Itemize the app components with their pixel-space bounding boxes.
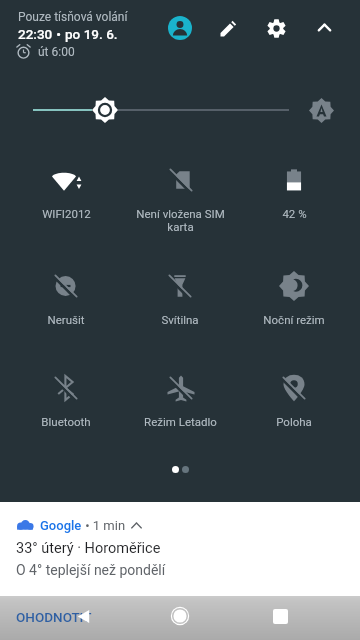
button[interactable]: OHODNOTIT [16, 609, 92, 625]
staticText: OHODNOTIT [16, 609, 92, 625]
button[interactable]: Není vložena SIM karta [123, 165, 237, 261]
staticText: Poloha [276, 415, 312, 428]
staticText: Google [40, 518, 82, 533]
button[interactable]: 42 % [237, 165, 351, 261]
button[interactable]: Edit [210, 10, 246, 46]
staticText: 33° úterý · Horoměřice [16, 540, 161, 557]
button[interactable]: Recents [262, 598, 298, 634]
staticText: Pouze tísňová volání [18, 10, 128, 24]
button[interactable]: Svítilna [123, 271, 237, 367]
button[interactable]: Nerušit [9, 271, 123, 367]
staticText: út 6:00 [38, 45, 75, 59]
button[interactable]: Home [162, 598, 198, 634]
staticText: Režim Letadlo [144, 415, 217, 428]
button[interactable]: Google [16, 516, 142, 534]
staticText: Svítilna [161, 313, 199, 326]
button[interactable]: Poloha [237, 373, 351, 469]
staticText: Není vložena SIM karta [136, 207, 225, 233]
button[interactable]: WIFI2012 [9, 165, 123, 261]
button[interactable]: Settings [258, 10, 294, 46]
button[interactable]: Auto brightness [303, 92, 339, 128]
staticText: Noční režim [263, 313, 325, 326]
staticText: WIFI2012 [42, 207, 91, 220]
staticText: Bluetooth [41, 415, 91, 428]
staticText: • 1 min [82, 518, 126, 533]
button[interactable]: Bluetooth [9, 373, 123, 469]
staticText: 22:30 [18, 26, 53, 42]
staticText: po 19. 6. [65, 26, 118, 42]
staticText: Nerušit [47, 313, 85, 326]
button[interactable]: Režim Letadlo [123, 373, 237, 469]
staticText: O 4° teplejší než pondělí [16, 562, 166, 578]
button[interactable]: Collapse [306, 9, 342, 45]
button[interactable]: Account [162, 10, 198, 46]
staticText: • [53, 26, 65, 42]
staticText: 42 % [282, 207, 307, 220]
button[interactable]: Noční režim [237, 271, 351, 367]
button[interactable]: Back [65, 598, 101, 634]
